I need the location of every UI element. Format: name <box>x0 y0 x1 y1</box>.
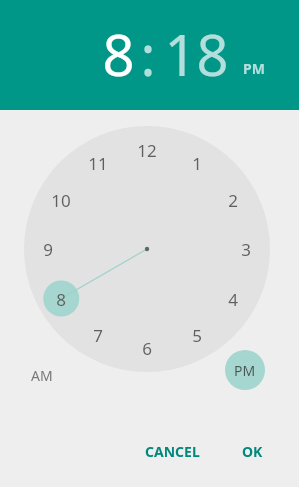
button[interactable]: 3 <box>231 236 261 262</box>
staticText: PM <box>234 361 256 380</box>
button[interactable]: 18 <box>156 16 236 82</box>
button[interactable]: 8 <box>96 16 140 82</box>
staticText: 6 <box>142 337 152 360</box>
button[interactable]: 2 <box>218 187 248 213</box>
button[interactable]: 4 <box>218 286 248 312</box>
button[interactable]: OK <box>231 436 273 466</box>
button[interactable]: CANCEL <box>136 436 208 466</box>
button[interactable]: PM <box>225 350 265 390</box>
staticText: AM <box>31 366 53 385</box>
staticText: 7 <box>93 324 103 347</box>
button[interactable]: 6 <box>132 335 162 361</box>
button[interactable]: PM <box>238 58 270 78</box>
staticText: : <box>140 16 156 82</box>
staticText: 9 <box>43 238 53 261</box>
staticText: 12 <box>137 139 157 162</box>
button[interactable]: 7 <box>83 322 113 348</box>
staticText: 11 <box>88 152 108 175</box>
staticText: CANCEL <box>145 442 200 461</box>
button[interactable]: 5 <box>182 322 212 348</box>
staticText: 2 <box>228 189 238 212</box>
button[interactable]: 9 <box>33 236 63 262</box>
button[interactable]: 11 <box>83 150 113 176</box>
staticText: OK <box>242 442 263 461</box>
button[interactable]: 1 <box>182 150 212 176</box>
staticText: PM <box>243 59 265 78</box>
staticText: 18 <box>164 16 229 82</box>
button[interactable]: 12 <box>132 137 162 163</box>
button[interactable]: 10 <box>46 187 76 213</box>
staticText: 10 <box>51 189 71 212</box>
staticText: 4 <box>228 288 238 311</box>
staticText: 8 <box>102 16 135 82</box>
button[interactable]: AM <box>20 360 64 390</box>
button[interactable]: 8 <box>46 286 76 312</box>
staticText: 8 <box>56 288 66 311</box>
staticText: 3 <box>241 238 251 261</box>
staticText: 1 <box>192 152 202 175</box>
staticText: 5 <box>192 324 202 347</box>
